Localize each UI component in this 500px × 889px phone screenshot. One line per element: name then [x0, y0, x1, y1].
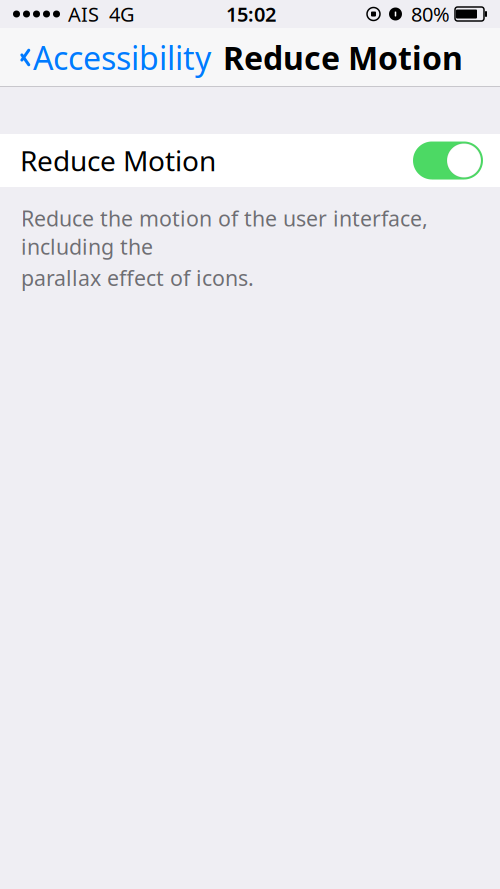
staticText: Reduce Motion [20, 142, 216, 179]
staticText: Reduce the motion of the user interface,… [21, 204, 428, 261]
staticText: AIS [68, 1, 99, 27]
staticText: Accessibility [33, 36, 211, 79]
staticText: 4G [109, 1, 135, 27]
button[interactable]: Accessibility [0, 28, 211, 87]
staticText: 15:02 [226, 1, 276, 27]
button[interactable]: Reduce Motion [0, 134, 500, 187]
staticText: 80% [411, 1, 450, 27]
staticText: parallax effect of icons. [21, 264, 254, 292]
staticText: Reduce Motion [223, 36, 463, 79]
